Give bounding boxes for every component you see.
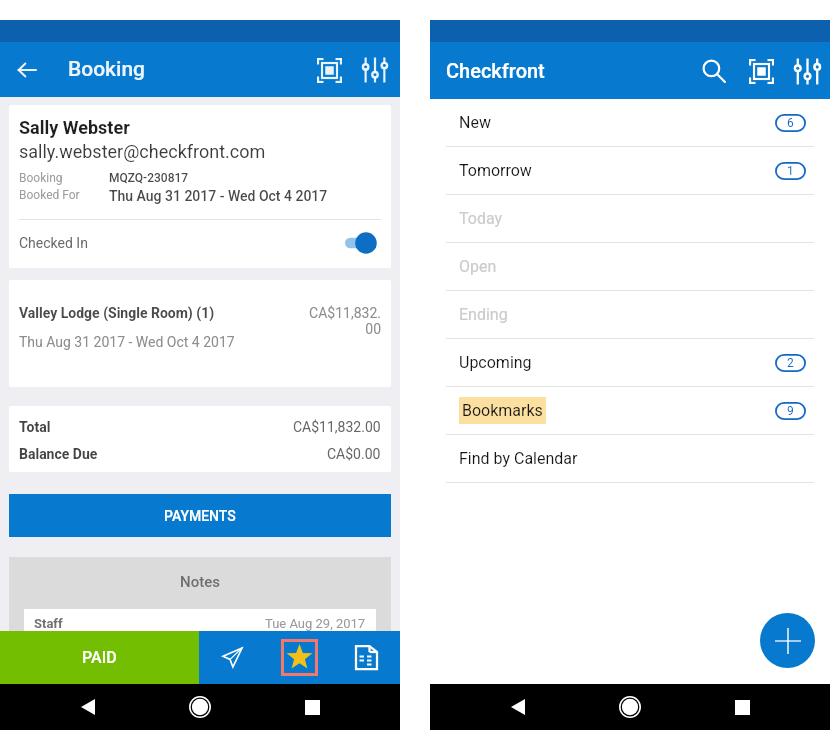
button[interactable]: Filter <box>352 47 398 93</box>
button[interactable]: PAID <box>0 631 199 684</box>
staticText: sally.webster@checkfront.com <box>19 141 266 162</box>
staticText: Notes <box>9 573 391 591</box>
button[interactable]: Recents <box>719 684 765 730</box>
staticText: New <box>459 113 491 132</box>
button[interactable]: Bookmarks <box>430 387 830 435</box>
button[interactable]: Scan <box>738 48 784 94</box>
staticText: Checked In <box>19 235 88 251</box>
staticText: Ending <box>459 305 508 324</box>
button[interactable]: Upcoming <box>430 339 830 387</box>
button[interactable]: Home <box>177 684 223 730</box>
staticText: 2 <box>787 356 794 370</box>
button[interactable]: Search <box>690 48 738 94</box>
button[interactable]: Home <box>607 684 653 730</box>
staticText: Tue Aug 29, 2017 <box>265 616 366 631</box>
button[interactable]: Tomorrow <box>430 147 830 195</box>
button[interactable]: New <box>430 99 830 147</box>
staticText: Balance Due <box>19 446 98 462</box>
button[interactable]: Today <box>430 195 830 243</box>
staticText: Upcoming <box>459 353 532 372</box>
staticText: Tomorrow <box>459 161 532 180</box>
button[interactable]: Recents <box>289 684 335 730</box>
staticText: Booked For <box>19 188 109 202</box>
staticText: Checkfront <box>446 59 545 82</box>
staticText: Booking <box>19 171 109 185</box>
button[interactable]: Send <box>199 631 266 684</box>
button[interactable]: Find by Calendar <box>430 435 830 483</box>
staticText: Valley Lodge (Single Room) (1) <box>19 305 307 321</box>
button[interactable]: Ending <box>430 291 830 339</box>
staticText: CA$11,832.00 <box>293 419 381 435</box>
button[interactable]: Bookmark <box>266 631 333 684</box>
staticText: Thu Aug 31 2017 - Wed Oct 4 2017 <box>109 188 328 204</box>
button[interactable]: Filter <box>784 48 830 94</box>
button[interactable]: Back <box>65 684 111 730</box>
button[interactable]: Back <box>0 43 54 97</box>
staticText: Booking <box>68 57 145 82</box>
button[interactable]: Scan <box>306 47 352 93</box>
staticText: Open <box>459 257 497 276</box>
button[interactable]: Back <box>495 684 541 730</box>
staticText: Sally Webster <box>19 117 130 138</box>
button[interactable]: PAYMENTS <box>9 494 391 537</box>
staticText: Bookmarks <box>462 401 543 420</box>
staticText: 9 <box>787 404 794 418</box>
staticText: Total <box>19 419 51 435</box>
staticText: Today <box>459 209 503 228</box>
staticText: Thu Aug 31 2017 - Wed Oct 4 2017 <box>19 334 235 350</box>
button[interactable]: Invoice <box>333 631 400 684</box>
button[interactable]: Add <box>760 613 815 668</box>
staticText: PAYMENTS <box>164 508 236 524</box>
staticText: CA$0.00 <box>327 446 381 462</box>
staticText: Find by Calendar <box>459 449 578 468</box>
staticText: Staff <box>34 616 63 631</box>
button[interactable]: Open <box>430 243 830 291</box>
staticText: MQZQ-230817 <box>109 171 189 185</box>
staticText: PAID <box>82 648 117 667</box>
staticText: 1 <box>787 164 794 178</box>
staticText: 6 <box>787 116 794 130</box>
staticText: CA$11,832.00 <box>307 305 381 337</box>
